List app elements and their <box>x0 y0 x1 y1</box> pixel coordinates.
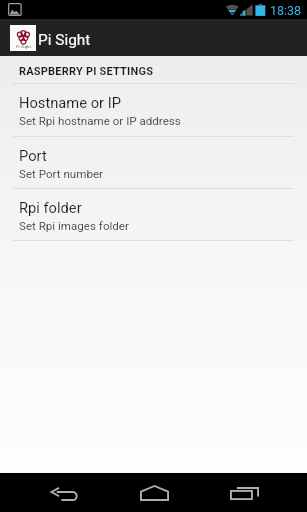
staticText: Set Rpi images folder <box>19 219 129 233</box>
button[interactable]: Home <box>109 473 199 512</box>
staticText: Rpi folder <box>19 199 82 216</box>
staticText: Pi Sight <box>38 31 91 49</box>
staticText: Set Port number <box>19 167 103 181</box>
staticText: Hostname or IP <box>19 94 121 111</box>
staticText: Pi Sight <box>16 44 31 49</box>
staticText: 18:38 <box>270 3 302 18</box>
button[interactable]: Rpi folder <box>0 189 307 241</box>
button[interactable]: Back <box>19 473 109 512</box>
staticText: RASPBERRY PI SETTINGS <box>19 65 154 78</box>
button[interactable]: Port <box>0 137 307 189</box>
button[interactable]: Hostname or IP <box>0 84 307 136</box>
staticText: Set Rpi hostname or IP address <box>19 114 181 128</box>
staticText: Port <box>19 147 47 164</box>
button[interactable]: Recent apps <box>199 473 289 512</box>
